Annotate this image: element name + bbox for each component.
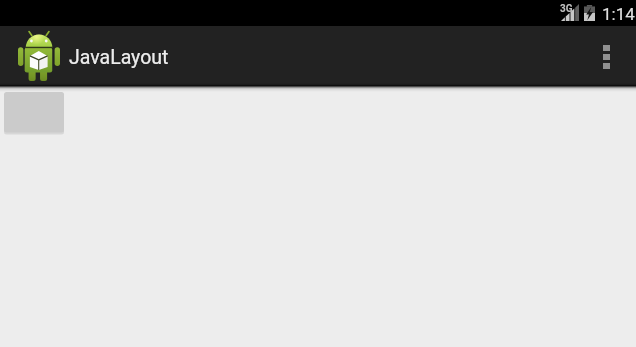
button[interactable]: JavaLayout (0, 26, 180, 86)
staticText: 1:14 (602, 4, 635, 24)
staticText: 3G (560, 3, 573, 15)
staticText: JavaLayout (69, 46, 169, 69)
button[interactable]: More options (583, 26, 633, 86)
